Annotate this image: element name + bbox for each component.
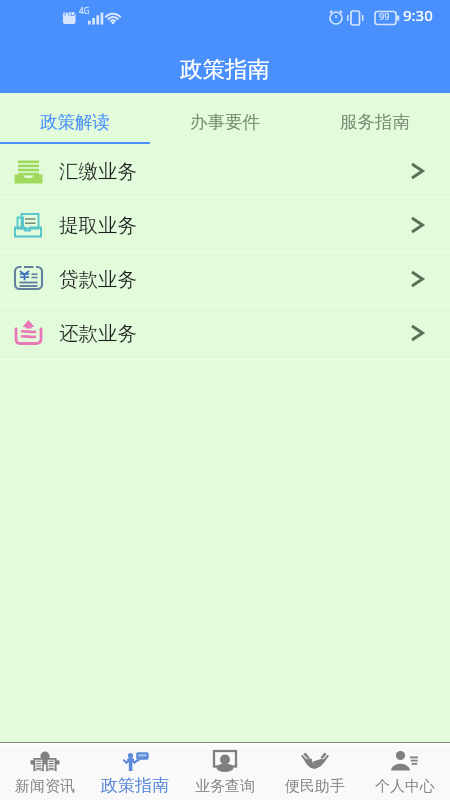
staticText: 99	[379, 10, 390, 22]
button[interactable]: 还款业务	[0, 306, 450, 359]
staticText: HD	[64, 7, 76, 18]
button[interactable]: 贷款业务	[0, 252, 450, 305]
button[interactable]: 汇缴业务	[0, 144, 450, 197]
staticText: 4G	[79, 5, 90, 16]
staticText: 9:30	[403, 5, 433, 25]
button[interactable]: 提取业务	[0, 198, 450, 251]
staticText: 业务查询	[195, 777, 255, 796]
button[interactable]: Profile	[360, 745, 450, 800]
staticText: 政策解读	[40, 111, 110, 133]
staticText: 还款业务	[59, 321, 137, 346]
staticText: 便民助手	[285, 777, 345, 796]
staticText: 提取业务	[59, 213, 137, 238]
staticText: 个人中心	[375, 777, 435, 796]
staticText: 新闻资讯	[15, 777, 75, 796]
button[interactable]: 政策解读	[0, 93, 150, 144]
button[interactable]: News	[0, 745, 90, 800]
button[interactable]: Helper	[270, 745, 360, 800]
button[interactable]: 办事要件	[150, 93, 300, 144]
button[interactable]: 服务指南	[300, 93, 450, 144]
staticText: 办事要件	[190, 111, 260, 133]
staticText: 贷款业务	[59, 267, 137, 292]
button[interactable]: Query	[180, 745, 270, 800]
staticText: 政策指南	[180, 55, 270, 83]
staticText: 服务指南	[340, 111, 410, 133]
staticText: 汇缴业务	[59, 159, 137, 184]
button[interactable]: Policy guide	[90, 745, 180, 800]
staticText: 政策指南	[101, 775, 169, 796]
